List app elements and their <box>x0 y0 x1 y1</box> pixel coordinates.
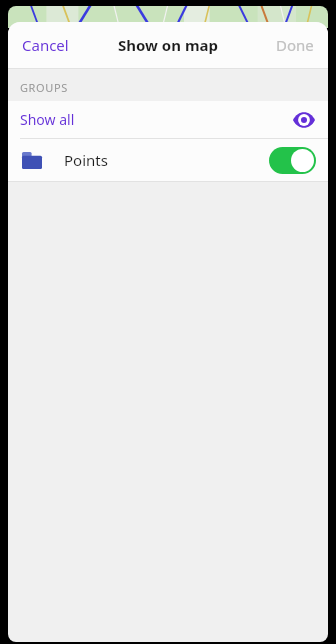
staticText: GROUPS <box>20 80 68 95</box>
button[interactable]: Show all <box>8 101 328 138</box>
staticText: Cancel <box>22 35 69 55</box>
button[interactable]: Points <box>8 139 328 181</box>
staticText: Points <box>64 150 108 170</box>
button[interactable]: Toggle Points visibility <box>269 147 316 174</box>
staticText: Show all <box>20 110 75 129</box>
staticText: Done <box>276 35 314 55</box>
staticText: Show on map <box>118 35 218 55</box>
other: Show all <box>292 111 316 129</box>
button[interactable]: Cancel <box>8 25 83 65</box>
button[interactable]: Done <box>262 25 328 65</box>
